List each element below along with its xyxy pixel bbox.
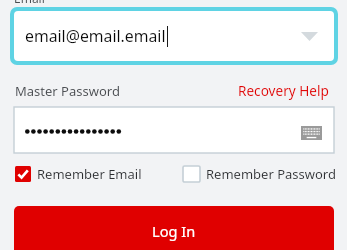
staticText: email@email.email xyxy=(25,25,166,47)
button[interactable]: Log In xyxy=(14,206,334,250)
staticText: Log In xyxy=(152,221,196,241)
staticText: Email xyxy=(14,0,45,6)
button[interactable]: Remember Password xyxy=(183,165,336,183)
button[interactable]: Show keyboard xyxy=(14,107,334,153)
staticText: Master Password xyxy=(15,82,120,100)
staticText: Recovery Help xyxy=(238,81,329,100)
other: Show email suggestions xyxy=(301,32,318,41)
button[interactable]: Remember Email xyxy=(15,165,142,183)
staticText: Remember Password xyxy=(206,165,336,183)
button[interactable]: Recovery Help xyxy=(238,81,329,100)
button[interactable]: email@email.email xyxy=(14,11,334,61)
staticText: Remember Email xyxy=(37,165,142,183)
other: Show keyboard xyxy=(301,126,322,140)
